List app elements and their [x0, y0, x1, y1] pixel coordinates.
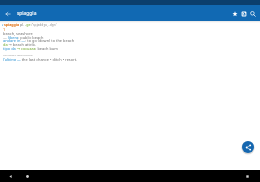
button[interactable]: Recents: [242, 171, 253, 182]
staticText: spiaggia: [17, 10, 37, 17]
button[interactable]: Back: [5, 171, 16, 182]
button[interactable]: Share: [242, 141, 254, 153]
button[interactable]: Search: [248, 9, 257, 18]
staticText: tipo da → cocuzza: beach bum: [3, 46, 58, 51]
staticText: LOCUZIONI IDIOMATICHE: [3, 53, 33, 56]
button[interactable]: Home: [22, 171, 33, 182]
button[interactable]: Back: [1, 7, 14, 20]
staticText: 1: [3, 27, 6, 32]
staticText: l'ultima — the last chance • ditch • res…: [3, 57, 78, 62]
staticText: beach, seashore: [3, 31, 33, 36]
button[interactable]: Bookmark: [230, 9, 239, 18]
staticText: ▾ spiaggia pl. -ge /ˈspjaddʒa, -dʒe/: [2, 22, 57, 27]
staticText: andare in —: to go (down) to the beach: [3, 38, 75, 43]
staticText: da → beach attrib.: [3, 42, 36, 47]
staticText: — libera: public beach: [3, 35, 44, 40]
button[interactable]: Notes: [239, 9, 248, 18]
